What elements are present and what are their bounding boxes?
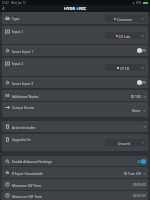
button[interactable]: Type — [2, 12, 148, 24]
staticText: Input 1 — [12, 29, 24, 33]
button[interactable]: If Input Unavailable — [2, 167, 148, 178]
staticText: CV Fill — [120, 66, 130, 70]
staticText: Additional Nodes — [12, 94, 39, 98]
staticText: 10:42 — [2, 1, 9, 5]
button[interactable]: Enable Advanced Settings — [2, 156, 148, 166]
staticText: Type — [12, 16, 20, 20]
button[interactable]: Back — [0, 5, 7, 12]
staticText: If Input Unavailable — [12, 171, 43, 175]
button[interactable]: Insert Input 2 — [2, 77, 148, 88]
button[interactable]: Toggle off — [137, 48, 146, 53]
button[interactable]: CV Fill — [105, 64, 146, 71]
staticText: Wed, Jan 12 — [11, 1, 26, 5]
button[interactable]: Insert Input 1 — [2, 45, 148, 56]
button[interactable]: None — [132, 108, 146, 112]
button[interactable]: CV Low — [105, 32, 146, 39]
staticText: Unused — [118, 141, 130, 145]
staticText: Maximum Off Time — [12, 194, 42, 198]
staticText: Insert Input 2 — [12, 81, 34, 85]
button[interactable]: 100 — [131, 94, 146, 98]
staticText: 100 — [135, 94, 141, 98]
staticText: HYDR — [64, 6, 76, 11]
staticText: None — [132, 108, 141, 112]
staticText: Minimum Off Time — [12, 183, 42, 187]
staticText: NIC — [79, 6, 87, 11]
staticText: CV Low — [119, 34, 131, 38]
button[interactable]: Maximum Off Time — [2, 191, 148, 200]
staticText: Upgrade On — [12, 137, 31, 141]
staticText: Output Device — [12, 105, 35, 109]
staticText: Active Includes — [12, 125, 36, 129]
button[interactable]: Active Includes — [2, 121, 148, 132]
button[interactable]: Turn Off — [124, 171, 146, 175]
button[interactable]: Container — [105, 15, 146, 22]
staticText: 00:00:00 — [133, 183, 146, 187]
staticText: Container — [117, 17, 133, 21]
button[interactable]: Additional Nodes — [2, 90, 148, 101]
button[interactable]: Unused — [105, 139, 146, 146]
button[interactable]: Toggle on — [137, 159, 146, 164]
staticText: Enable Advanced Settings — [12, 159, 52, 163]
button[interactable]: Output Device — [2, 102, 148, 117]
staticText: Input 2 — [12, 61, 24, 65]
button[interactable]: Input 1 — [2, 26, 148, 44]
staticText: 81% — [136, 1, 142, 5]
button[interactable]: Toggle off — [137, 80, 146, 85]
button[interactable]: Upgrade On — [2, 134, 148, 151]
staticText: Turn Off — [128, 171, 141, 175]
staticText: 00:00:00 — [133, 194, 146, 198]
button[interactable]: Input 2 — [2, 58, 148, 76]
button[interactable]: Minimum Off Time — [2, 179, 148, 190]
staticText: Insert Input 1 — [12, 49, 34, 53]
